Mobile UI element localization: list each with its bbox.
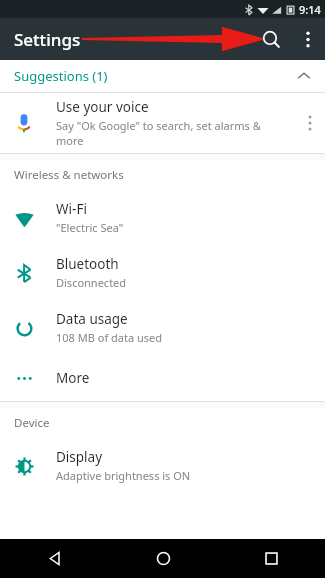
staticText: Settings [14, 28, 81, 51]
staticText: Disconnected [56, 275, 127, 290]
button[interactable]: More options [291, 22, 325, 56]
staticText: Adaptive brightness is ON [56, 468, 191, 483]
staticText: "Electric Sea" [56, 220, 124, 235]
staticText: Display [56, 448, 103, 466]
button[interactable]: Recent apps [217, 539, 325, 578]
staticText: Wireless & networks [14, 167, 124, 183]
button[interactable]: Back [0, 539, 109, 578]
staticText: Data usage [56, 310, 128, 328]
staticText: 9:14 [299, 2, 321, 17]
staticText: Suggestions (1) [14, 67, 108, 85]
staticText: Say "Ok Google" to search, set alarms & … [56, 118, 291, 148]
button[interactable]: Suggestion options [295, 108, 325, 138]
staticText: Use your voice [56, 98, 149, 116]
button[interactable]: More [0, 355, 325, 401]
button[interactable]: Home [109, 539, 217, 578]
staticText: Wi-Fi [56, 200, 87, 218]
staticText: Device [14, 415, 50, 431]
button[interactable]: Display [0, 438, 325, 493]
staticText: 108 MB of data used [56, 330, 162, 345]
button[interactable]: Search [251, 19, 291, 59]
button[interactable]: Wi-Fi [0, 190, 325, 245]
staticText: Bluetooth [56, 255, 119, 273]
button[interactable]: Bluetooth [0, 245, 325, 300]
staticText: More [56, 369, 90, 387]
button[interactable]: Use your voice [0, 93, 325, 153]
button[interactable]: Data usage [0, 300, 325, 355]
button[interactable]: Suggestions (1) [0, 60, 325, 92]
